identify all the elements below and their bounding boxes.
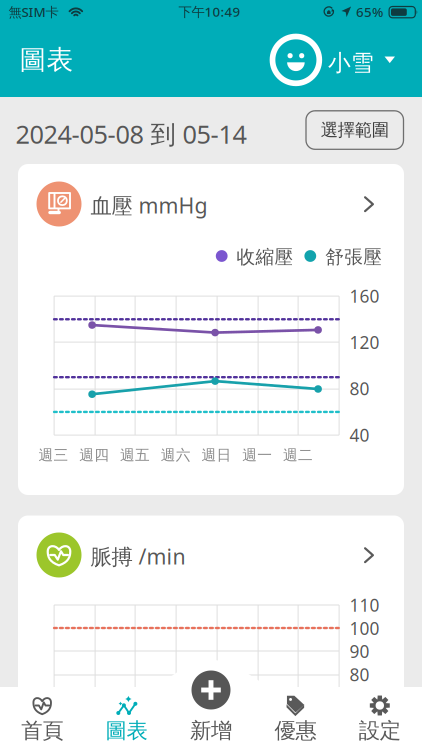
staticText: 80 [350, 377, 370, 400]
staticText: 40 [350, 423, 370, 446]
button[interactable]: 優惠 [253, 687, 338, 750]
button[interactable]: 新增 [169, 687, 253, 750]
staticText: 110 [350, 593, 380, 616]
button[interactable]: 小雪 [272, 35, 406, 85]
staticText: 80 [350, 663, 370, 686]
staticText: 2024-05-08 到 05-14 [15, 117, 246, 151]
staticText: 首頁 [21, 717, 63, 744]
staticText: 設定 [359, 717, 401, 744]
staticText: 週四 [79, 446, 109, 464]
staticText: 優惠 [274, 717, 316, 744]
button[interactable]: 選擇範圍 [306, 111, 403, 149]
staticText: 新增 [190, 717, 232, 744]
staticText: 圖表 [19, 43, 73, 76]
staticText: 收縮壓 [236, 245, 293, 268]
staticText: 週二 [283, 446, 313, 464]
staticText: 週三 [39, 446, 69, 464]
staticText: 選擇範圍 [321, 119, 389, 141]
staticText: 週六 [161, 446, 191, 464]
staticText: 圖表 [106, 717, 148, 744]
staticText: 週一 [242, 446, 272, 464]
staticText: 脈搏 /min [90, 542, 185, 570]
staticText: 無SIM卡 [9, 3, 59, 21]
staticText: 120 [350, 331, 380, 354]
staticText: 100 [350, 617, 380, 640]
button[interactable]: 首頁 [0, 687, 84, 750]
staticText: 週五 [120, 446, 150, 464]
staticText: 90 [350, 640, 370, 663]
button[interactable]: 脈搏 /min [18, 515, 404, 594]
button[interactable]: 設定 [338, 687, 422, 750]
staticText: 小雪 [328, 49, 374, 77]
staticText: 65% [356, 3, 383, 21]
button[interactable]: 圖表 [84, 687, 169, 750]
staticText: 血壓 mmHg [90, 191, 207, 219]
button[interactable]: 新增 [191, 670, 230, 709]
staticText: 50 [350, 732, 370, 750]
staticText: 舒張壓 [325, 245, 382, 268]
staticText: 下午10:49 [179, 3, 241, 20]
staticText: 60 [350, 709, 370, 732]
staticText: 週日 [201, 446, 231, 464]
staticText: 160 [350, 284, 380, 307]
button[interactable]: 血壓 mmHg [18, 164, 404, 243]
